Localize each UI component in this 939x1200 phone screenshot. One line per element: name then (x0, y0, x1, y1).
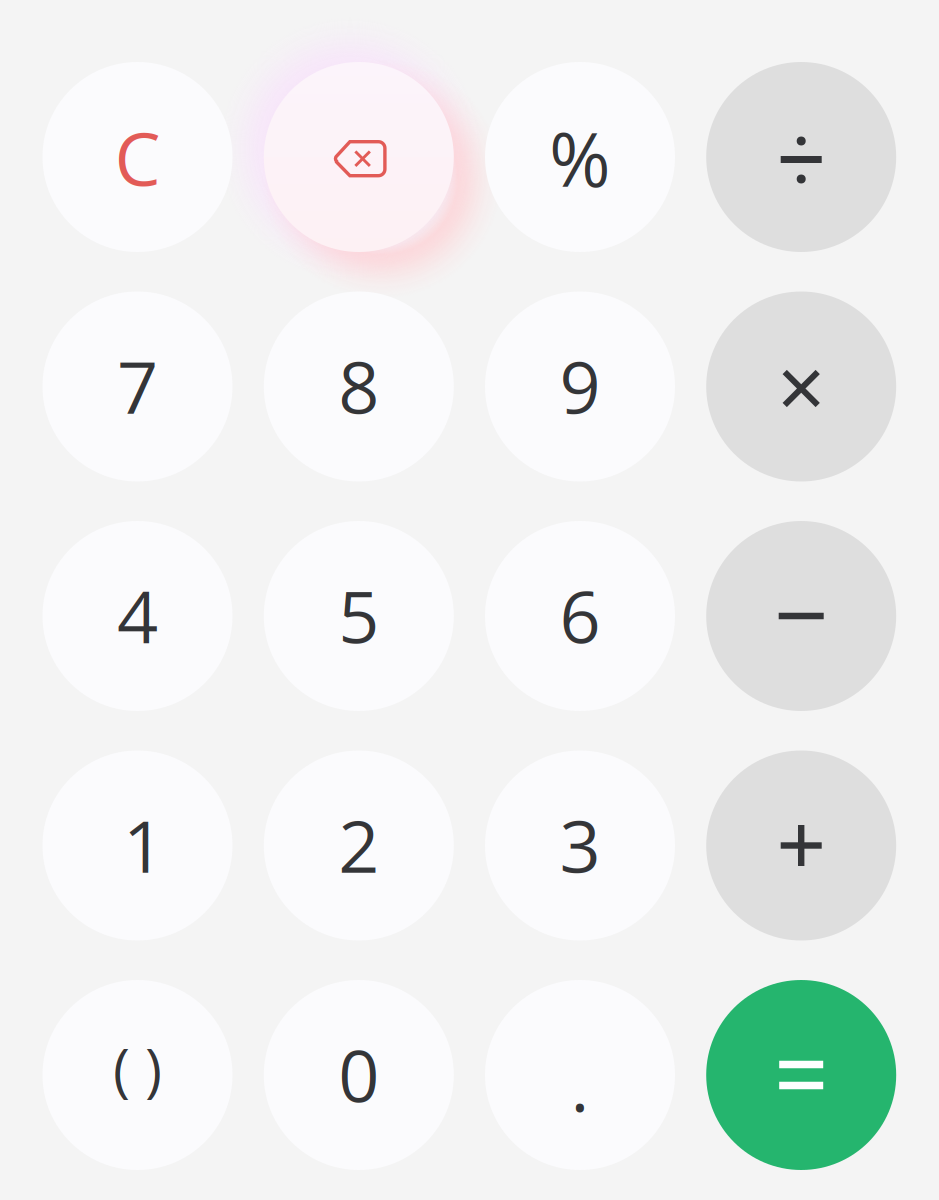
staticText: 1 (123, 796, 164, 894)
button[interactable]: Percent (485, 62, 675, 252)
button[interactable]: 1 (42, 750, 232, 940)
staticText: 0 (338, 1025, 379, 1123)
button[interactable]: 8 (264, 291, 454, 481)
button[interactable]: Decimal point (485, 980, 675, 1170)
staticText: 7 (117, 337, 158, 435)
staticText: ( ) (113, 1029, 162, 1108)
staticText: 3 (559, 796, 600, 894)
button[interactable]: 5 (264, 521, 454, 711)
button[interactable]: 2 (264, 750, 454, 940)
button[interactable]: Divide (706, 62, 896, 252)
staticText: 2 (338, 796, 379, 894)
button[interactable]: Parentheses (42, 980, 232, 1170)
button[interactable]: Equals (706, 980, 896, 1170)
button[interactable]: Delete (264, 62, 454, 252)
staticText: . (570, 1035, 589, 1133)
staticText: 4 (117, 566, 158, 664)
button[interactable]: 4 (42, 521, 232, 711)
staticText: 9 (559, 337, 600, 435)
button[interactable]: 0 (264, 980, 454, 1170)
staticText: C (114, 108, 160, 207)
staticText: 6 (559, 566, 600, 664)
staticText: % (549, 107, 611, 209)
staticText: 8 (338, 337, 379, 435)
staticText: 5 (338, 566, 379, 664)
button[interactable]: 7 (42, 291, 232, 481)
button[interactable]: 9 (485, 291, 675, 481)
button[interactable]: 3 (485, 750, 675, 940)
button[interactable]: Subtract (706, 521, 896, 711)
button[interactable]: Add (706, 750, 896, 940)
button[interactable]: Multiply (706, 291, 896, 481)
button[interactable]: 6 (485, 521, 675, 711)
button[interactable]: Clear (42, 62, 232, 252)
